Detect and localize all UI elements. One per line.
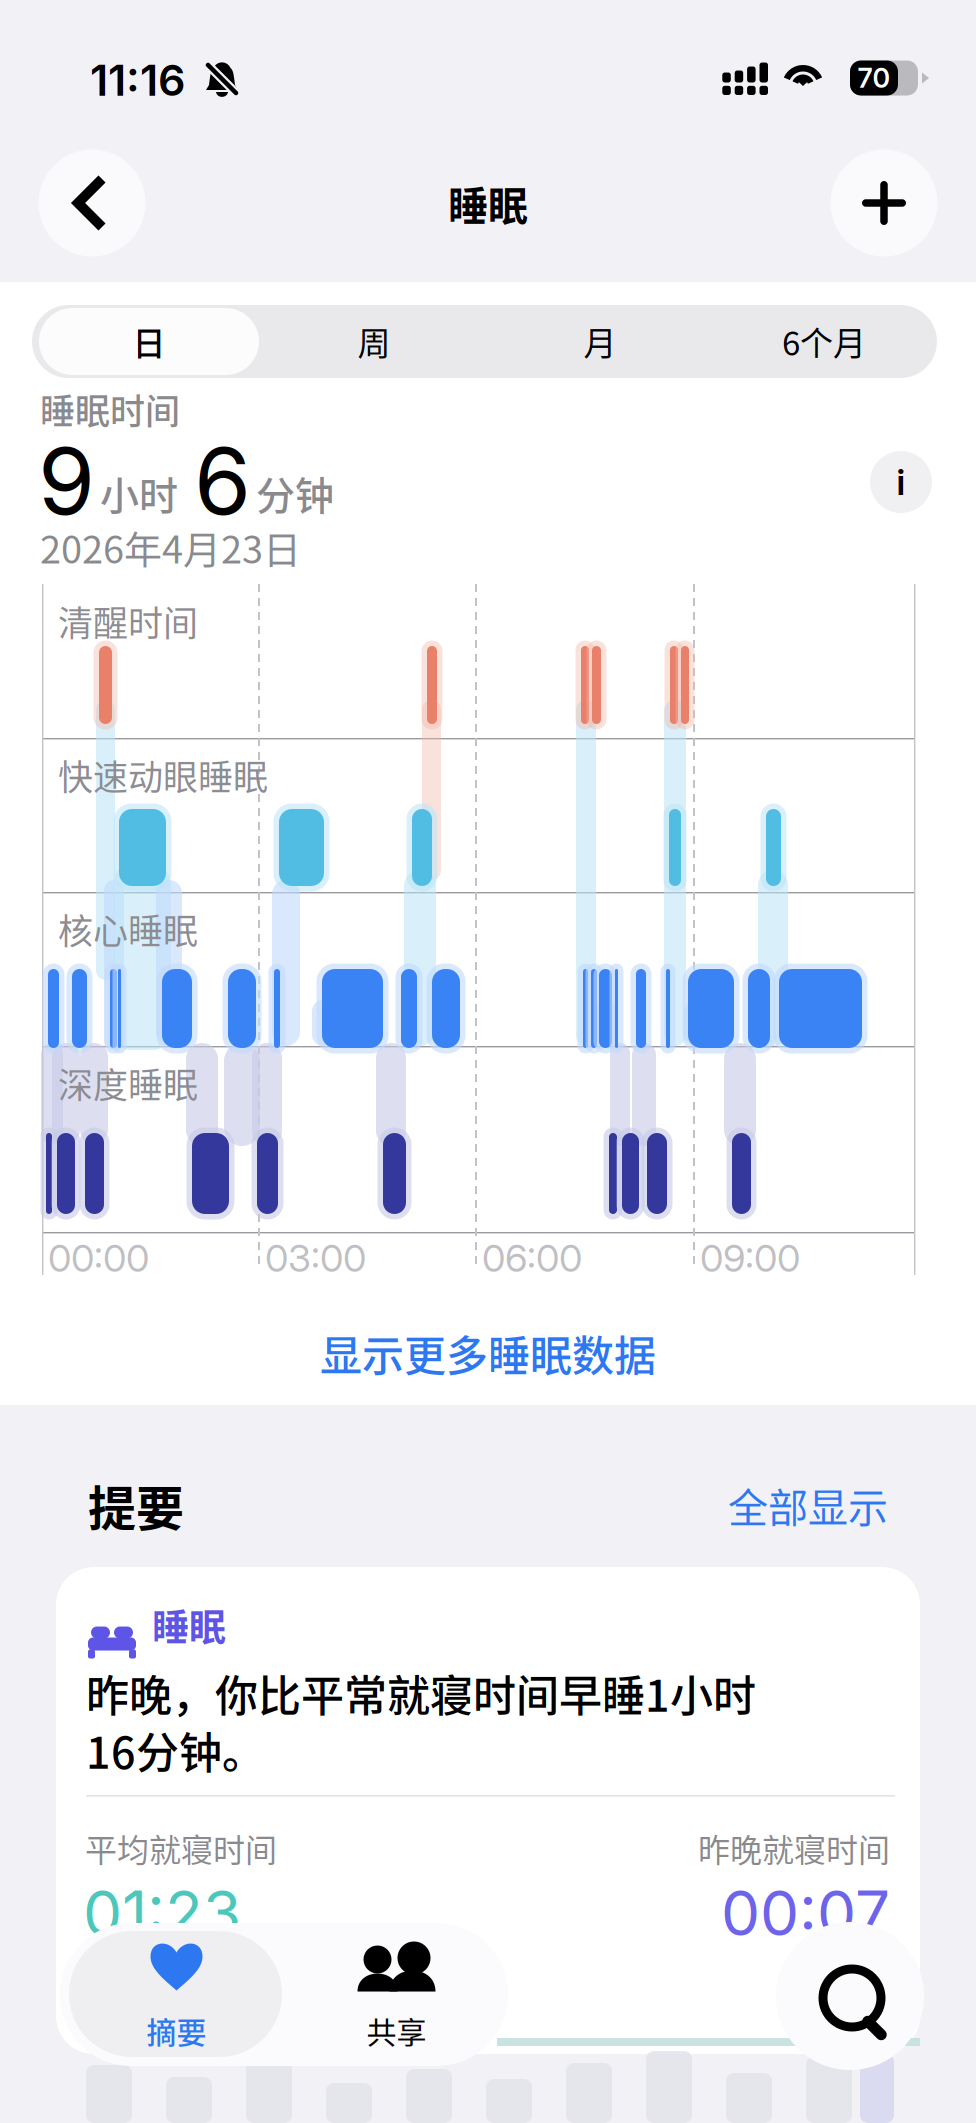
staticText: 日 (132, 317, 165, 365)
staticText: 昨晚，你比平常就寝时间早睡1小时 (86, 1662, 756, 1724)
button[interactable]: 全部显示 (588, 1476, 888, 1534)
staticText: 00:07 (721, 1875, 890, 1950)
staticText: 11:16 (90, 54, 186, 106)
staticText: 提要 (88, 1470, 184, 1540)
staticText: 小时 (100, 465, 178, 521)
button[interactable]: 添加 (830, 149, 937, 256)
staticText: 睡眠 (152, 1598, 226, 1652)
staticText: 深度睡眠 (58, 1058, 198, 1108)
staticText: 03:00 (265, 1235, 366, 1281)
button[interactable]: 信息 (870, 451, 932, 513)
staticText: 周 (357, 317, 390, 365)
staticText: 分钟 (256, 465, 334, 521)
staticText: 00:00 (48, 1235, 149, 1281)
staticText: 摘要 (146, 2009, 206, 2052)
button[interactable]: 共享 (286, 1929, 503, 2056)
button[interactable]: 6个月 (714, 304, 934, 377)
staticText: 01:23 (83, 1875, 241, 1950)
staticText: 9 (38, 425, 95, 537)
staticText: 全部显示 (728, 1476, 888, 1534)
staticText: 清醒时间 (58, 596, 198, 646)
staticText: i (896, 460, 905, 504)
staticText: 16分钟。 (86, 1719, 265, 1781)
staticText: 睡眠 (448, 174, 528, 232)
staticText: 共享 (366, 2009, 426, 2052)
button[interactable]: 显示更多睡眠数据 (188, 1318, 788, 1388)
staticText: 09:00 (700, 1235, 800, 1281)
staticText: 月 (583, 317, 616, 365)
button[interactable]: 月 (490, 304, 710, 377)
button[interactable]: 搜索 (776, 1922, 924, 2070)
staticText: 核心睡眠 (58, 904, 198, 954)
staticText: 快速动眼睡眠 (58, 750, 268, 800)
staticText: 显示更多睡眠数据 (320, 1323, 656, 1383)
staticText: 2026年4月23日 (40, 519, 301, 574)
button[interactable]: 摘要 (70, 1929, 283, 2056)
staticText: 06:00 (482, 1235, 582, 1281)
staticText: 睡眠时间 (40, 384, 180, 434)
staticText: 6个月 (782, 317, 866, 365)
button[interactable]: 返回 (38, 149, 145, 256)
button[interactable]: 日 (39, 304, 259, 377)
staticText: 6 (194, 425, 251, 537)
button[interactable]: 周 (264, 304, 484, 377)
staticText: 昨晚就寝时间 (698, 1825, 890, 1871)
staticText: 平均就寝时间 (85, 1825, 277, 1871)
staticText: 70 (857, 62, 890, 94)
